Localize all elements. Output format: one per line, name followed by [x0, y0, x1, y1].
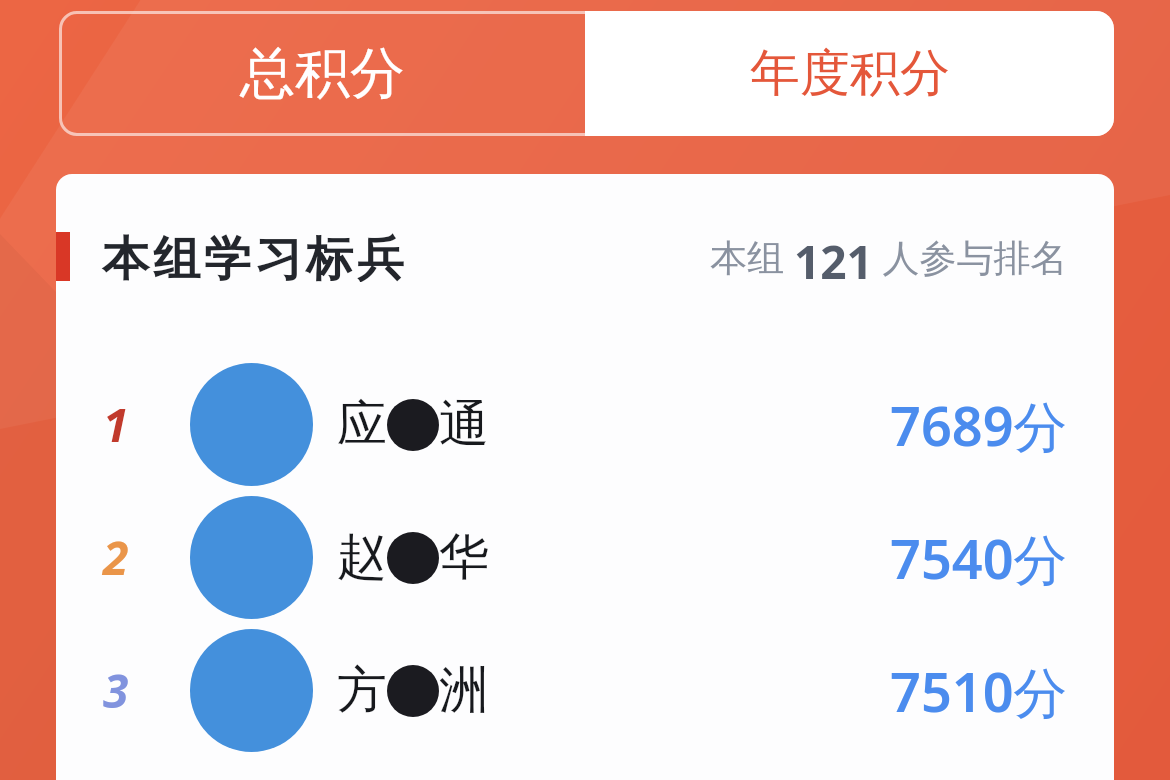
button[interactable]: 2	[56, 491, 1114, 624]
button[interactable]: 年度积分	[585, 11, 1114, 136]
staticText: 本组	[710, 231, 794, 282]
staticText: 应	[337, 393, 387, 456]
staticText: 人参与排名	[873, 231, 1068, 282]
button[interactable]: 1	[56, 358, 1114, 491]
staticText: 通	[439, 393, 489, 456]
staticText: 华	[439, 526, 489, 589]
staticText: 总积分	[240, 39, 405, 108]
staticText: 洲	[439, 659, 489, 722]
button[interactable]: 3	[56, 624, 1114, 757]
staticText: 1	[103, 393, 129, 456]
staticText: 年度积分	[750, 42, 950, 105]
staticText: 2	[103, 526, 129, 589]
staticText: 7689分	[890, 388, 1068, 462]
staticText: 方	[337, 659, 387, 722]
staticText: 3	[103, 659, 129, 722]
staticText: 本组学习标兵	[100, 230, 406, 282]
button[interactable]: 总积分	[59, 11, 585, 136]
staticText: 121	[794, 230, 873, 282]
staticText: 7510分	[890, 654, 1068, 728]
staticText: 7540分	[890, 521, 1068, 595]
staticText: 赵	[337, 526, 387, 589]
